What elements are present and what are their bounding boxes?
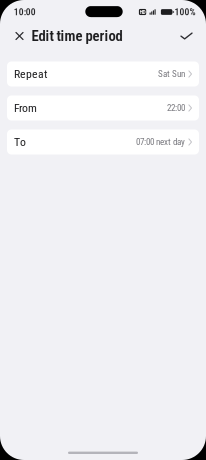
staticText: 07:00 next day (136, 137, 185, 147)
staticText: 22:00 (167, 103, 185, 113)
staticText: HD (140, 9, 146, 15)
staticText: Sat Sun (158, 69, 185, 79)
staticText: To (14, 135, 26, 149)
button[interactable]: From (7, 95, 199, 120)
staticText: 100% (174, 6, 195, 18)
staticText: Repeat (14, 67, 47, 81)
staticText: 10:00 (14, 6, 36, 18)
button[interactable]: Repeat (7, 61, 199, 86)
staticText: Edit time period (31, 27, 122, 45)
button[interactable]: Close (9, 25, 30, 46)
staticText: From (14, 101, 37, 115)
button[interactable]: Done (176, 25, 197, 46)
button[interactable]: To (7, 129, 199, 154)
